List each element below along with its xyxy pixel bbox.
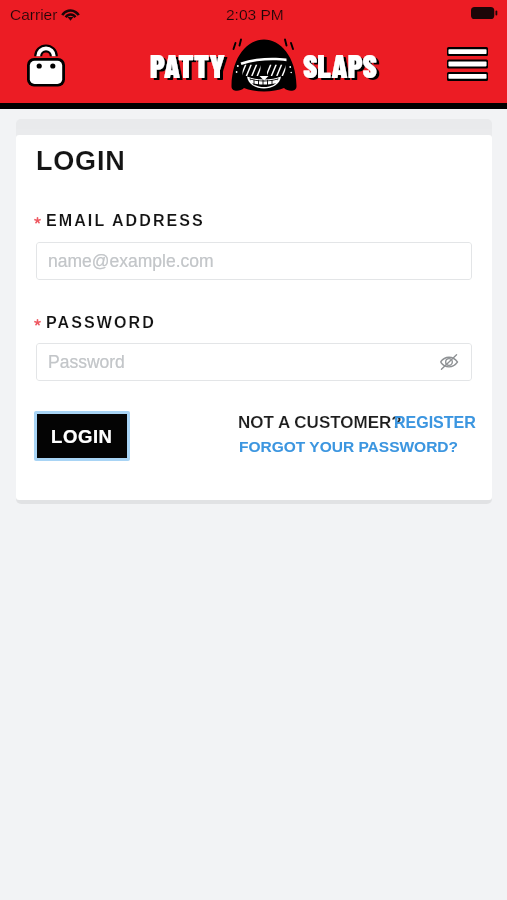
staticText: LOGIN [36,146,126,176]
button[interactable]: Shopping bag [22,41,70,89]
staticText: REGISTER [394,414,476,432]
staticText: 2:03 PM [226,6,284,23]
staticText: SLAPS [303,47,377,84]
button[interactable]: Password [36,343,472,381]
staticText: EMAIL ADDRESS [46,212,205,230]
button[interactable]: Menu [447,47,488,81]
staticText: name@example.com [48,251,214,271]
staticText: Carrier [10,6,58,23]
button[interactable]: FORGOT YOUR PASSWORD? [239,438,459,455]
button[interactable]: REGISTER [394,414,476,432]
staticText: LOGIN [51,426,113,447]
staticText: PATTY [153,49,228,86]
staticText: SLAPS [306,49,380,86]
staticText: PATTY [150,47,225,84]
staticText: PASSWORD [46,314,156,332]
button[interactable]: name@example.com [36,242,472,280]
staticText: Password [48,352,125,372]
button[interactable]: LOGIN [37,414,127,458]
staticText: FORGOT YOUR PASSWORD? [239,438,459,455]
staticText: NOT A CUSTOMER? [238,413,402,432]
other: Show password [440,354,458,370]
